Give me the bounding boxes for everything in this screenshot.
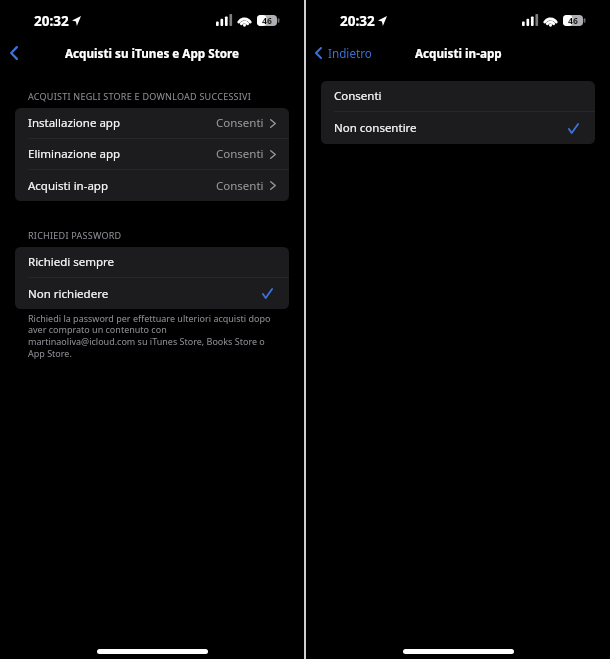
button[interactable]: Indietro: [3, 40, 25, 66]
staticText: Richiedi sempre: [28, 254, 115, 270]
staticText: 20:32: [34, 12, 69, 30]
staticText: Acquisti su iTunes e App Store: [65, 45, 240, 61]
staticText: Non richiedere: [28, 286, 109, 302]
button[interactable]: Installazione app: [15, 108, 289, 139]
button[interactable]: Indietro: [315, 45, 372, 61]
staticText: Consenti: [216, 178, 264, 194]
staticText: Consenti: [216, 115, 264, 131]
staticText: 20:32: [340, 12, 375, 30]
staticText: Richiedi la password per effettuare ulte…: [28, 312, 271, 360]
button[interactable]: Non richiedere: [15, 278, 289, 309]
staticText: ACQUISTI NEGLI STORE E DOWNLOAD SUCCESSI…: [28, 90, 252, 102]
button[interactable]: Eliminazione app: [15, 139, 289, 170]
button[interactable]: Richiedi sempre: [15, 247, 289, 278]
button[interactable]: Acquisti in-app: [15, 170, 289, 201]
staticText: 46: [262, 15, 272, 26]
staticText: Non consentire: [334, 120, 417, 136]
staticText: Acquisti in-app: [28, 178, 109, 194]
button[interactable]: Non consentire: [321, 112, 595, 144]
staticText: Indietro: [328, 45, 372, 61]
staticText: Eliminazione app: [28, 146, 121, 162]
staticText: 46: [568, 15, 578, 26]
staticText: Consenti: [216, 146, 264, 162]
button[interactable]: Consenti: [321, 81, 595, 112]
staticText: RICHIEDI PASSWORD: [28, 229, 122, 241]
staticText: Consenti: [334, 88, 382, 104]
staticText: Installazione app: [28, 115, 121, 131]
staticText: Acquisti in-app: [415, 45, 502, 61]
